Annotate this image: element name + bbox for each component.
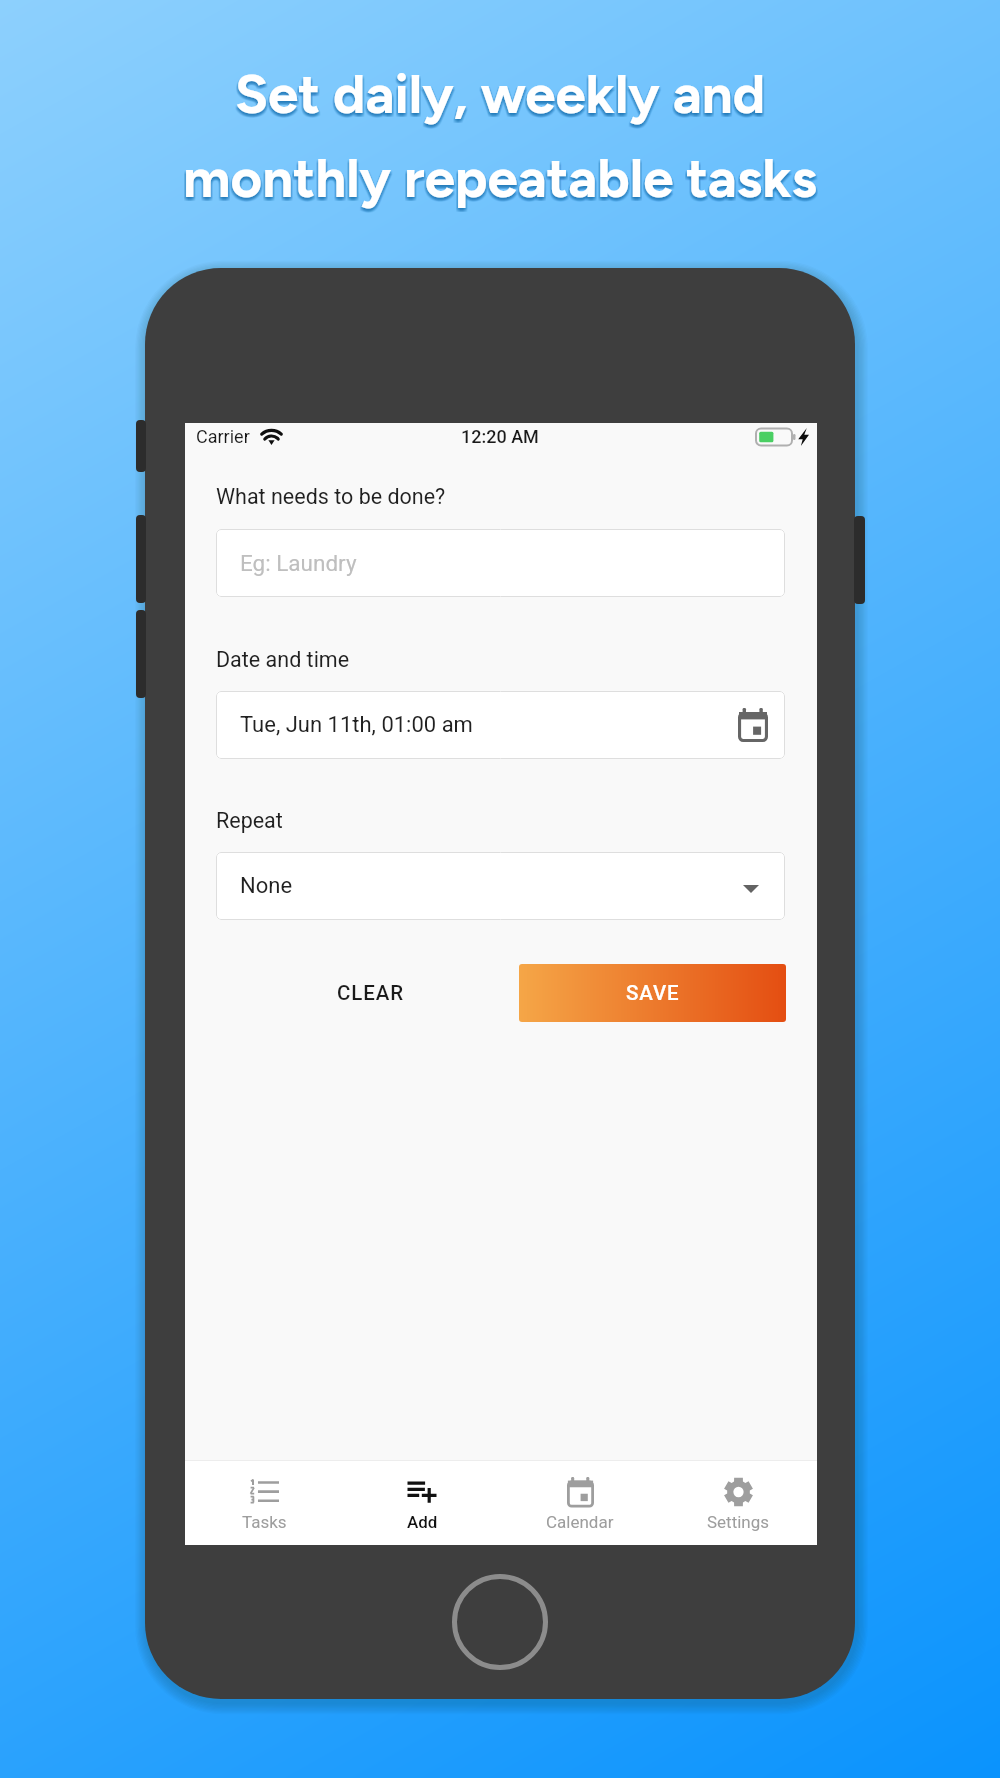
staticText: Set daily, weekly and monthly repeatable… [0, 64, 1000, 213]
staticText: Set daily, weekly and monthly repeatable… [0, 62, 999, 211]
button[interactable]: Tasks [185, 1461, 343, 1545]
staticText: Set daily, weekly and monthly repeatable… [0, 62, 998, 211]
staticText: Set daily, weekly and monthly repeatable… [2, 63, 1000, 212]
staticText: Repeat [216, 808, 283, 833]
staticText: Set daily, weekly and monthly repeatable… [1, 62, 1000, 211]
staticText: Tasks [242, 1512, 287, 1532]
staticText: Settings [707, 1512, 770, 1532]
staticText: What needs to be done? [216, 484, 446, 509]
staticText: Set daily, weekly and monthly repeatable… [0, 62, 1000, 211]
staticText: Carrier [196, 426, 250, 447]
staticText: Set daily, weekly and monthly repeatable… [0, 65, 1000, 214]
staticText: Set daily, weekly and monthly repeatable… [2, 62, 1000, 211]
staticText: Set daily, weekly and monthly repeatable… [0, 65, 999, 214]
staticText: Set daily, weekly and monthly repeatable… [0, 63, 1000, 212]
staticText: Set daily, weekly and monthly repeatable… [1, 64, 1000, 213]
button[interactable]: CLEAR [311, 964, 430, 1022]
staticText: Tue, Jun 11th, 01:00 am [240, 712, 731, 738]
staticText: Add [407, 1512, 438, 1532]
staticText: Set daily, weekly and monthly repeatable… [0, 61, 1000, 210]
button[interactable]: Tue, Jun 11th, 01:00 am [216, 691, 785, 759]
button[interactable]: None [216, 852, 785, 920]
staticText: CLEAR [337, 981, 405, 1005]
staticText: Set daily, weekly and monthly repeatable… [0, 63, 999, 212]
other: Wi-Fi [259, 427, 284, 445]
staticText: Set daily, weekly and monthly repeatable… [1, 63, 1000, 212]
staticText: Set daily, weekly and monthly repeatable… [0, 64, 999, 213]
staticText: 12:20 AM [461, 426, 539, 447]
staticText: Set daily, weekly and monthly repeatable… [0, 63, 998, 212]
button[interactable]: Settings [659, 1461, 817, 1545]
staticText: Eg: Laundry [240, 550, 357, 576]
other: Battery charging [755, 428, 797, 446]
staticText: Set daily, weekly and monthly repeatable… [0, 64, 998, 213]
staticText: None [240, 873, 741, 899]
staticText: Set daily, weekly and monthly repeatable… [2, 65, 1000, 214]
button[interactable]: SAVE [519, 964, 786, 1022]
button[interactable]: Eg: Laundry [216, 529, 785, 597]
button[interactable]: Calendar [501, 1461, 659, 1545]
button[interactable]: Pick date and time [738, 705, 768, 745]
staticText: Calendar [546, 1512, 614, 1532]
staticText: SAVE [626, 981, 680, 1005]
staticText: Set daily, weekly and monthly repeatable… [0, 65, 998, 214]
staticText: Date and time [216, 647, 350, 672]
button[interactable]: Add [343, 1461, 501, 1545]
staticText: Set daily, weekly and monthly repeatable… [1, 65, 1000, 214]
staticText: Set daily, weekly and monthly repeatable… [2, 64, 1000, 213]
button[interactable]: Choose repeat interval [741, 872, 761, 906]
